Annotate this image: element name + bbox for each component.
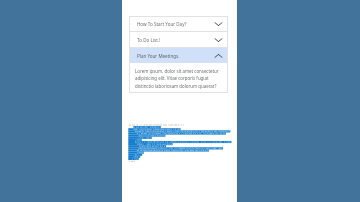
button[interactable]: How To Start Your Day? [129, 16, 228, 31]
staticText: Plan Your Meetings. [137, 53, 180, 59]
staticText: Lorem ipsum, dolor sit amet consectetur … [135, 68, 227, 89]
button[interactable]: Plan Your Meetings. [129, 48, 228, 63]
staticText: How To Start Your Day? [137, 21, 187, 27]
button[interactable]: To Do List.! [129, 32, 228, 47]
staticText: To Do List.! [137, 37, 161, 43]
